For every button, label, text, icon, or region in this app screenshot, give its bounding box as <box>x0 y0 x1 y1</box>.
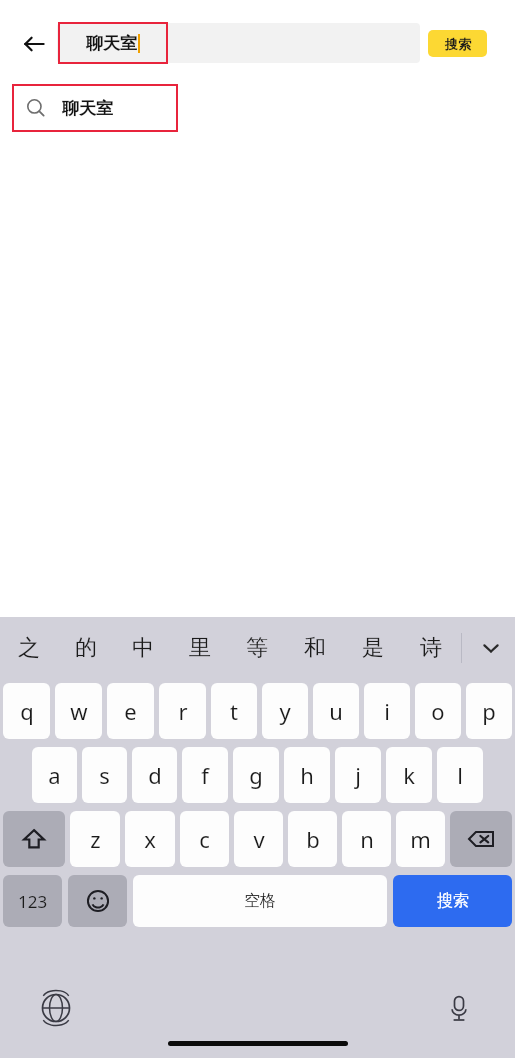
button[interactable]: 空格 <box>133 875 387 927</box>
staticText: f <box>201 760 209 790</box>
staticText: y <box>279 696 291 726</box>
staticText: 等 <box>246 634 268 662</box>
staticText: 空格 <box>244 891 276 911</box>
button[interactable]: 123 <box>3 875 62 927</box>
button[interactable]: i <box>364 683 410 739</box>
staticText: 123 <box>18 890 48 913</box>
button[interactable]: 是 <box>344 617 402 679</box>
button[interactable]: Backspace <box>450 811 512 867</box>
staticText: 的 <box>75 634 97 662</box>
staticText: h <box>300 760 314 790</box>
button[interactable]: w <box>55 683 102 739</box>
button[interactable]: s <box>82 747 127 803</box>
staticText: x <box>144 824 156 854</box>
staticText: 之 <box>18 634 40 662</box>
button[interactable]: f <box>182 747 228 803</box>
staticText: 聊天室 <box>86 33 137 54</box>
button[interactable]: q <box>3 683 50 739</box>
staticText: 里 <box>189 634 211 662</box>
button[interactable]: v <box>234 811 283 867</box>
staticText: 是 <box>362 634 384 662</box>
button[interactable]: g <box>233 747 279 803</box>
button[interactable]: Emoji <box>68 875 127 927</box>
staticText: l <box>457 760 463 790</box>
button[interactable]: d <box>132 747 177 803</box>
staticText: p <box>482 696 496 726</box>
staticText: j <box>355 760 361 790</box>
staticText: n <box>360 824 374 854</box>
staticText: z <box>90 824 101 854</box>
button[interactable]: j <box>335 747 381 803</box>
button[interactable]: 等 <box>228 617 286 679</box>
staticText: 搜索 <box>445 36 471 52</box>
button[interactable]: 聊天室 <box>58 22 168 64</box>
button[interactable]: b <box>288 811 337 867</box>
button[interactable]: p <box>466 683 512 739</box>
button[interactable]: k <box>386 747 432 803</box>
staticText: d <box>148 760 162 790</box>
button[interactable]: u <box>313 683 359 739</box>
button[interactable]: 之 <box>0 617 57 679</box>
button[interactable]: Change keyboard language <box>34 986 78 1030</box>
staticText: c <box>199 824 210 854</box>
staticText: 聊天室 <box>62 98 113 119</box>
staticText: w <box>70 696 88 726</box>
button[interactable]: m <box>396 811 445 867</box>
button[interactable]: x <box>125 811 175 867</box>
button[interactable]: r <box>159 683 206 739</box>
button[interactable]: h <box>284 747 330 803</box>
button[interactable]: 诗 <box>402 617 460 679</box>
button[interactable] <box>57 23 420 63</box>
staticText: 搜索 <box>437 891 469 911</box>
button[interactable]: 中 <box>114 617 171 679</box>
button[interactable]: a <box>32 747 77 803</box>
button[interactable]: n <box>342 811 391 867</box>
button[interactable]: 搜索 <box>428 30 487 57</box>
staticText: o <box>431 696 445 726</box>
staticText: t <box>230 696 238 726</box>
button[interactable]: 的 <box>57 617 114 679</box>
staticText: a <box>48 760 61 790</box>
staticText: e <box>124 696 137 726</box>
staticText: g <box>249 760 263 790</box>
button[interactable]: o <box>415 683 461 739</box>
button[interactable]: Shift <box>3 811 65 867</box>
button[interactable]: 搜索 <box>393 875 512 927</box>
button[interactable]: z <box>70 811 120 867</box>
staticText: u <box>329 696 343 726</box>
button[interactable]: Back <box>12 22 56 66</box>
button[interactable]: 里 <box>171 617 228 679</box>
staticText: k <box>403 760 415 790</box>
staticText: i <box>384 696 390 726</box>
staticText: b <box>306 824 320 854</box>
button[interactable]: 和 <box>286 617 344 679</box>
button[interactable]: 聊天室 <box>12 84 178 132</box>
button[interactable]: y <box>262 683 308 739</box>
staticText: v <box>253 824 265 854</box>
staticText: 中 <box>132 634 154 662</box>
button[interactable]: Collapse candidates <box>466 617 515 679</box>
button[interactable]: e <box>107 683 154 739</box>
staticText: s <box>99 760 110 790</box>
button[interactable]: l <box>437 747 483 803</box>
staticText: 诗 <box>420 634 442 662</box>
staticText: 和 <box>304 634 326 662</box>
staticText: q <box>20 696 34 726</box>
staticText: m <box>410 824 431 854</box>
button[interactable]: Voice input <box>437 986 481 1030</box>
button[interactable]: t <box>211 683 257 739</box>
staticText: r <box>178 696 188 726</box>
button[interactable]: c <box>180 811 229 867</box>
